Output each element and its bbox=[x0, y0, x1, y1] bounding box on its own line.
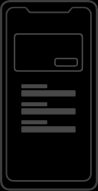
button[interactable]: Phone mockup bbox=[0, 0, 98, 191]
